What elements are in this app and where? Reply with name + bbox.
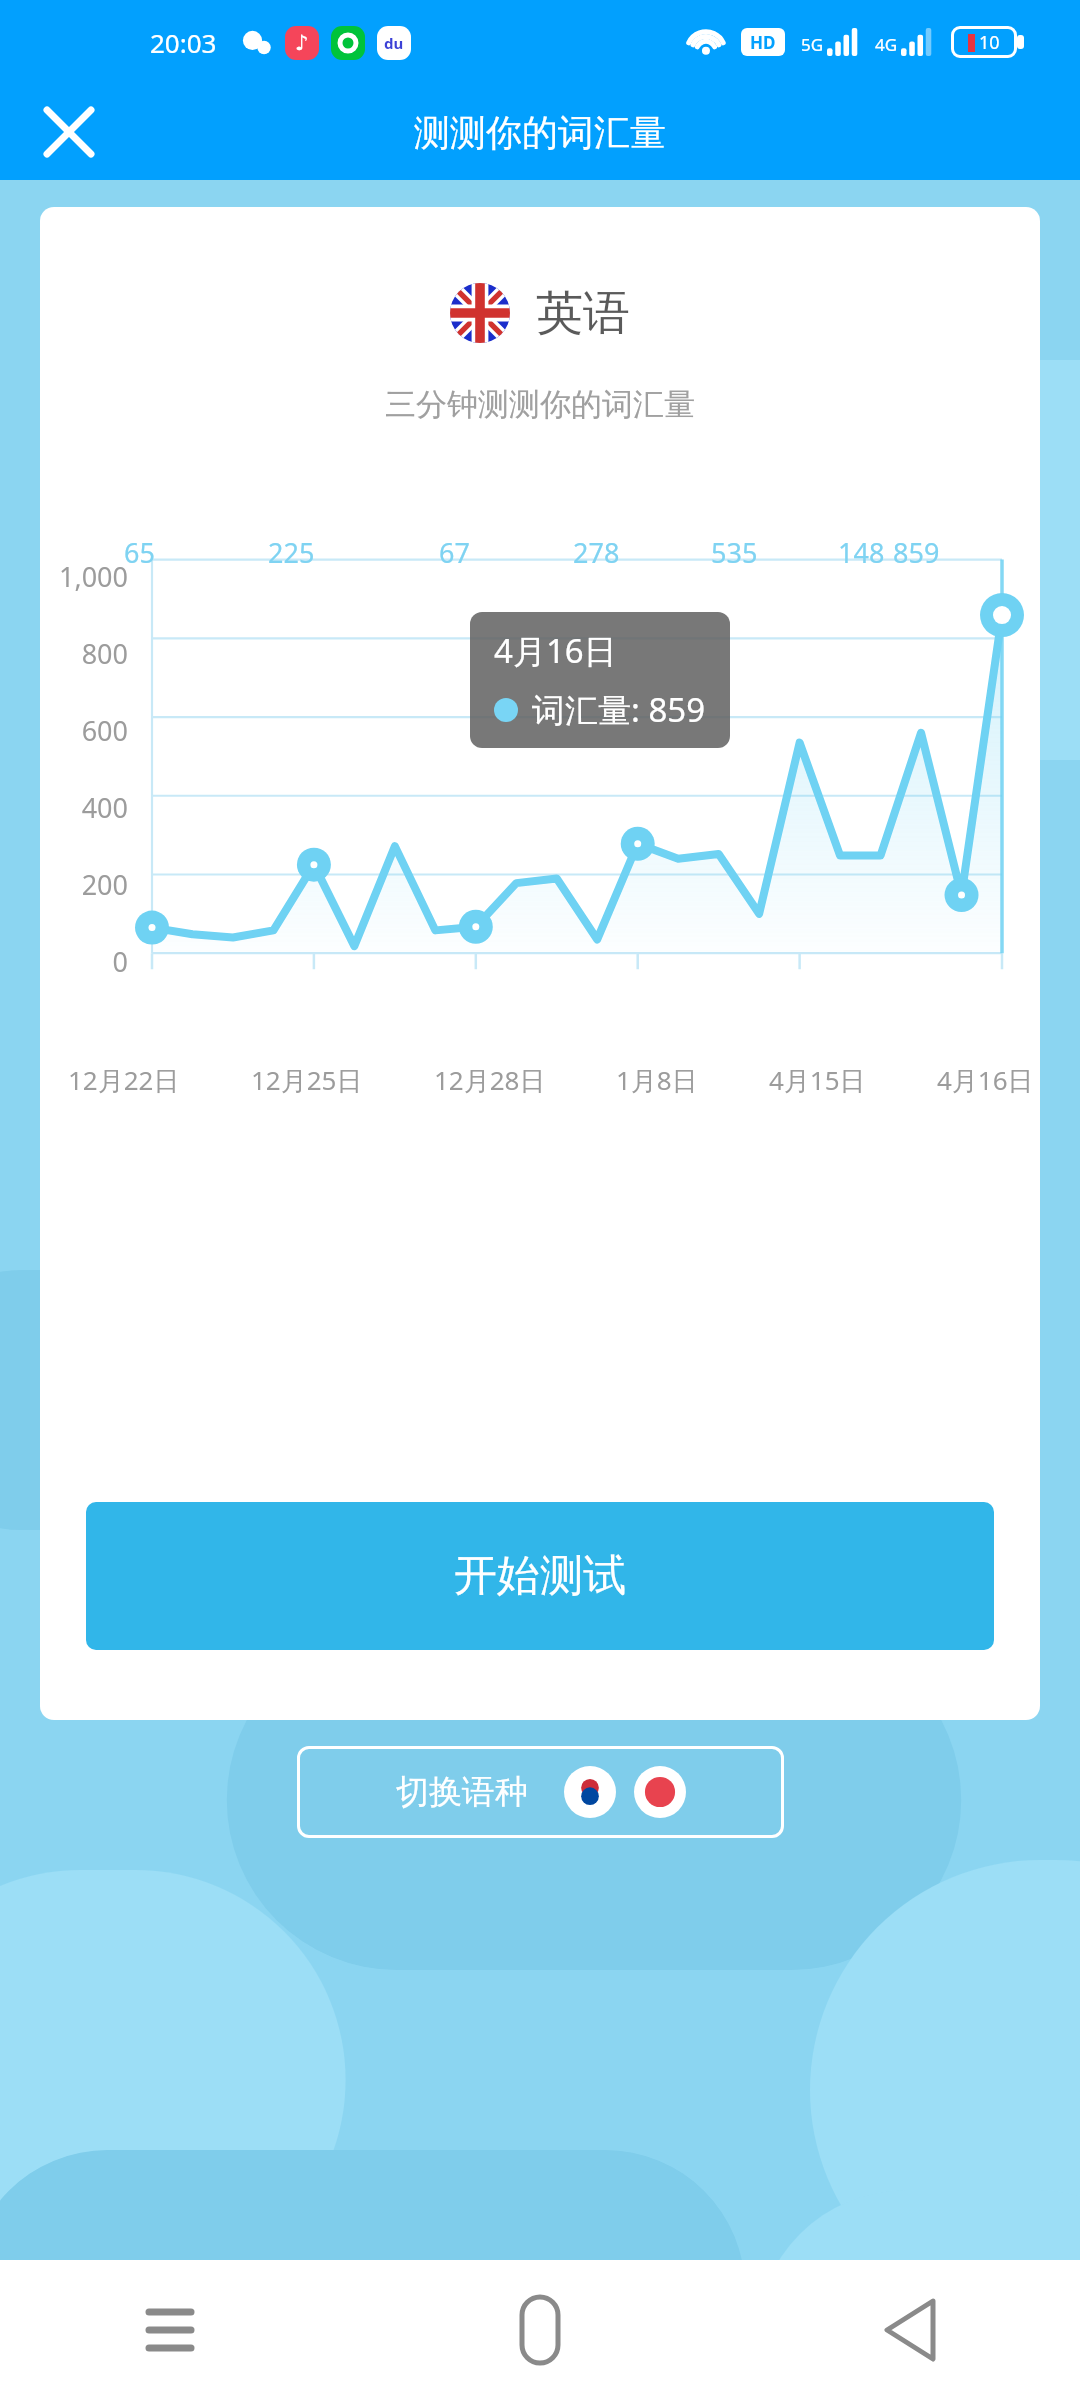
staticText: 278 (573, 534, 620, 571)
button[interactable]: 切换语种 (297, 1746, 784, 1838)
staticText: 5G (801, 33, 824, 56)
staticText: 225 (268, 534, 315, 571)
button[interactable]: Close (34, 97, 104, 167)
staticText: 800 (40, 635, 128, 672)
staticText: 英语 (536, 284, 630, 343)
other: Japanese (634, 1766, 686, 1818)
staticText: 200 (40, 866, 128, 903)
staticText: 三分钟测测你的词汇量 (40, 385, 1040, 424)
staticText: 65 (124, 534, 155, 571)
other: Korean (564, 1766, 616, 1818)
staticText: 859 (893, 534, 940, 571)
staticText: 12月28日 (434, 1062, 546, 1098)
other: English (450, 283, 510, 343)
staticText: 4月16日 (494, 628, 617, 673)
button[interactable]: Home (490, 2280, 590, 2380)
staticText: 测测你的词汇量 (414, 110, 666, 155)
staticText: 4月16日 (937, 1062, 1034, 1098)
staticText: 1,000 (40, 558, 128, 595)
staticText: 词汇量: 859 (532, 687, 706, 732)
staticText: 1月8日 (616, 1062, 698, 1098)
other: Wi-Fi (691, 25, 725, 59)
staticText: ♪ (295, 31, 309, 55)
button[interactable]: 开始测试 (86, 1502, 994, 1650)
button[interactable]: Recents (120, 2280, 220, 2380)
button[interactable]: Back (860, 2280, 960, 2380)
staticText: 12月25日 (251, 1062, 363, 1098)
staticText: 4G (875, 33, 898, 56)
staticText: 开始测试 (454, 1549, 626, 1603)
staticText: 600 (40, 712, 128, 749)
staticText: 20:03 (150, 25, 217, 60)
staticText: du (384, 33, 404, 53)
staticText: 67 (439, 534, 470, 571)
staticText: 0 (40, 943, 128, 980)
staticText: 4月15日 (769, 1062, 866, 1098)
staticText: 切换语种 (396, 1771, 528, 1813)
staticText: 400 (40, 789, 128, 826)
staticText: 12月22日 (68, 1062, 180, 1098)
staticText: 148 (838, 534, 885, 571)
staticText: 535 (711, 534, 758, 571)
staticText: 10 (979, 30, 1000, 55)
staticText: HD (750, 31, 776, 54)
